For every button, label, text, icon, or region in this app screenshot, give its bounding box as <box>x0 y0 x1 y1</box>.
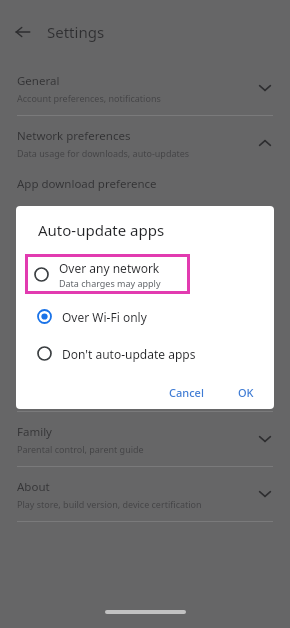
button[interactable]: Over any network <box>25 254 190 294</box>
button[interactable]: Network preferences <box>0 116 290 170</box>
staticText: General <box>17 73 60 89</box>
staticText: Family <box>17 424 52 440</box>
staticText: Settings <box>47 22 105 42</box>
button[interactable]: Over Wi-Fi only <box>16 300 274 333</box>
button[interactable]: Cancel <box>162 381 211 404</box>
staticText: Data usage for downloads, auto-updates <box>17 147 190 159</box>
button[interactable]: Back <box>9 18 37 46</box>
staticText: Play store, build version, device certif… <box>17 498 202 510</box>
button[interactable]: OK <box>231 381 261 404</box>
staticText: Auto-update apps <box>38 220 165 240</box>
button[interactable]: General <box>0 61 290 115</box>
staticText: About <box>17 479 50 495</box>
button[interactable]: About <box>0 467 290 521</box>
button[interactable]: Family <box>0 412 290 466</box>
staticText: Over Wi-Fi only <box>62 309 147 325</box>
staticText: Data charges may apply <box>59 277 161 289</box>
staticText: Over any network <box>59 260 160 276</box>
staticText: Network preferences <box>17 128 131 144</box>
staticText: Cancel <box>169 385 204 400</box>
staticText: OK <box>238 385 254 400</box>
button[interactable]: Don't auto-update apps <box>16 337 274 370</box>
staticText: Parental control, parent guide <box>17 443 144 455</box>
staticText: App download preference <box>17 176 157 192</box>
staticText: Account preferences, notifications <box>17 92 161 104</box>
staticText: Don't auto-update apps <box>62 346 196 362</box>
